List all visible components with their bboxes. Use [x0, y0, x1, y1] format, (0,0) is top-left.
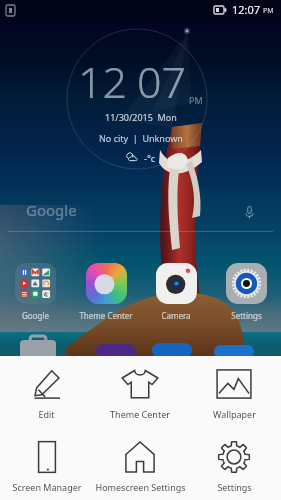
button[interactable]: Screen Manager	[0, 440, 93, 493]
button[interactable]: Settings	[211, 263, 281, 321]
button[interactable]: Wallpaper	[187, 367, 281, 420]
staticText: Settings	[217, 481, 252, 493]
staticText: Screen Manager	[12, 481, 82, 493]
staticText: Wallpaper	[213, 408, 256, 420]
button[interactable]: Google	[0, 263, 71, 321]
staticText: 11/30/2015 Mon	[105, 111, 177, 123]
staticText: 12:07	[232, 2, 261, 17]
button[interactable]: Google	[0, 196, 281, 232]
button[interactable]: Homescreen Settings	[93, 440, 187, 493]
other: Voice search	[242, 205, 257, 220]
button[interactable]: Settings	[187, 440, 281, 493]
button[interactable]: Camera	[141, 263, 211, 321]
button[interactable]: Edit	[0, 367, 93, 420]
staticText: Google	[26, 200, 77, 220]
staticText: PM	[263, 6, 274, 16]
staticText: Theme Center	[79, 310, 133, 321]
staticText: Google	[22, 310, 49, 321]
staticText: PM	[189, 94, 203, 106]
staticText: 07	[137, 52, 187, 111]
staticText: 12	[78, 52, 128, 111]
staticText: -°c	[144, 152, 156, 164]
staticText: Settings	[231, 310, 262, 321]
staticText: No city | Unknown	[99, 132, 183, 144]
staticText: Theme Center	[110, 408, 170, 420]
staticText: Camera	[161, 310, 191, 321]
button[interactable]: Theme Center	[93, 367, 187, 420]
staticText: Homescreen Settings	[95, 481, 186, 493]
button[interactable]: Theme Center	[71, 263, 141, 321]
staticText: Edit	[38, 408, 55, 420]
